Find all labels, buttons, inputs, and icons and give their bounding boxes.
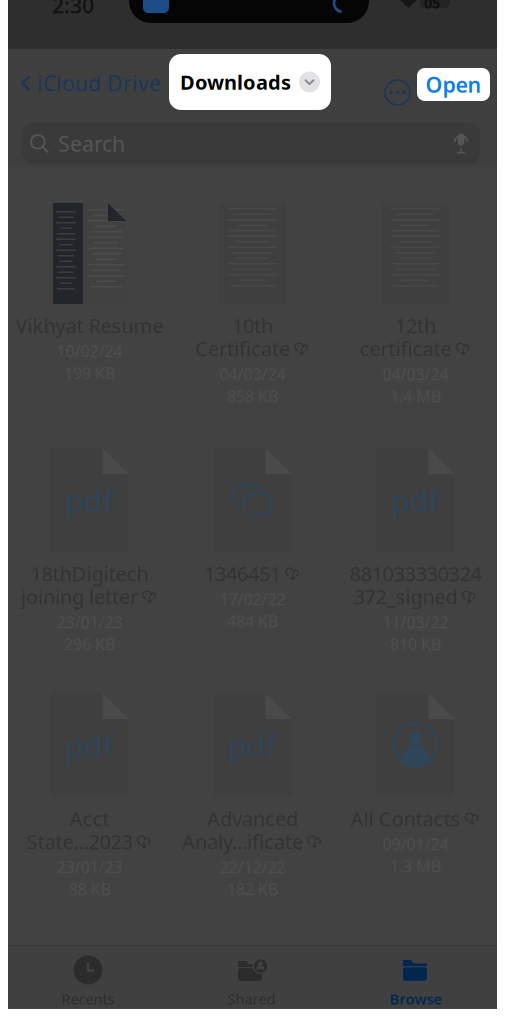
staticText: 18thDigitech (30, 560, 148, 587)
staticText: pdf (391, 480, 440, 520)
staticText: 372_signed (353, 583, 457, 610)
staticText: 810 KB (390, 633, 441, 655)
button[interactable]: Browse (335, 946, 497, 1009)
staticText: 05 (424, 0, 440, 12)
staticText: All Contacts (350, 805, 460, 832)
staticText: 23/01/23 (56, 611, 122, 633)
staticText: Analy...ificate (182, 828, 303, 855)
button[interactable]: Search (22, 123, 480, 164)
staticText: State...2023 (26, 828, 132, 855)
staticText: Vikhyat Resume (15, 312, 163, 339)
staticText: 23/01/23 (56, 856, 122, 878)
staticText: iCloud Drive (37, 69, 161, 97)
button[interactable]: pdf (8, 412, 171, 657)
staticText: 1.3 MB (390, 855, 441, 877)
button[interactable]: Downloads (169, 54, 331, 110)
staticText: certificate (359, 335, 451, 362)
staticText: Search (58, 129, 125, 158)
button[interactable]: iCloud Drive (14, 61, 165, 105)
staticText: pdf (65, 725, 114, 765)
staticText: 10/02/24 (56, 340, 122, 362)
staticText: pdf (65, 480, 114, 520)
staticText: Browse (389, 989, 442, 1008)
staticText: Advanced (207, 805, 298, 832)
button[interactable]: All Contacts (334, 657, 497, 902)
staticText: 17/02/22 (219, 588, 285, 610)
button[interactable]: More actions (375, 70, 420, 115)
button[interactable]: pdf (171, 657, 334, 902)
staticText: 199 KB (64, 362, 115, 384)
staticText: 1.4 MB (390, 385, 441, 407)
staticText: 296 KB (64, 633, 115, 655)
staticText: Shared (227, 989, 275, 1008)
staticText: Recents (61, 989, 114, 1008)
staticText: 1346451 (204, 560, 281, 587)
staticText: Acct (69, 805, 109, 832)
button[interactable]: Shared (168, 946, 335, 1009)
staticText: 2:30 (52, 0, 94, 19)
staticText: Certificate (195, 335, 290, 362)
staticText: 11/03/22 (382, 611, 448, 633)
staticText: 12th (395, 312, 436, 339)
staticText: 484 KB (227, 610, 278, 632)
staticText: 88 KB (68, 878, 110, 900)
staticText: 04/03/24 (382, 363, 448, 385)
button[interactable]: pdf (8, 657, 171, 902)
staticText: 04/03/24 (219, 363, 285, 385)
button[interactable]: pdf (334, 412, 497, 657)
staticText: 10th (232, 312, 273, 339)
staticText: pdf (228, 725, 277, 765)
staticText: joining letter (21, 583, 138, 610)
staticText: 858 KB (227, 385, 278, 407)
staticText: 09/01/24 (382, 833, 448, 855)
staticText: 22/12/22 (219, 856, 285, 878)
button[interactable]: Vikhyat Resume (8, 167, 171, 412)
staticText: Open (425, 70, 481, 99)
staticText: 881033330324 (349, 560, 481, 587)
staticText: 182 KB (227, 878, 278, 900)
button[interactable]: Recents (8, 946, 168, 1009)
staticText: Downloads (180, 69, 291, 95)
button[interactable]: Open (417, 68, 490, 101)
